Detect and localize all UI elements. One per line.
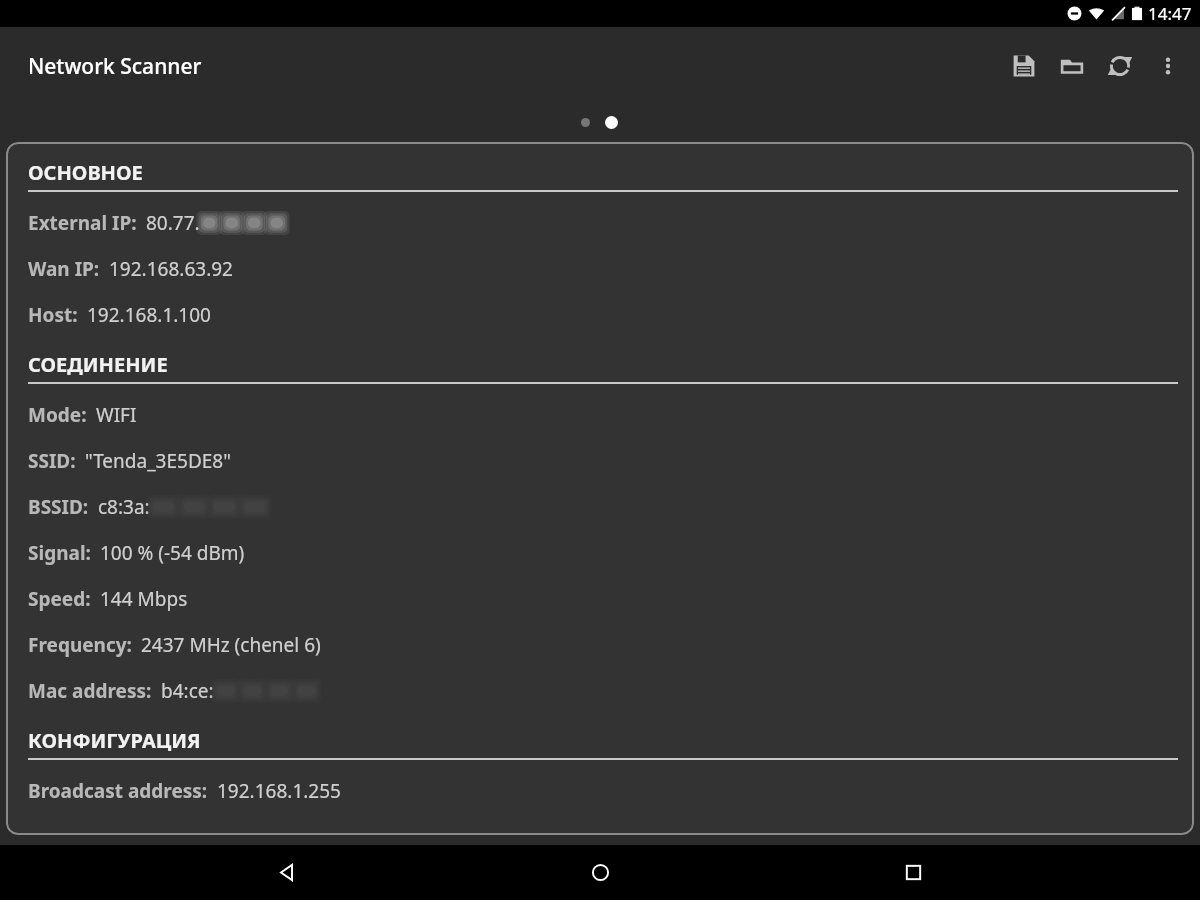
button[interactable]: BSSID: [28,484,1178,530]
staticText: Host: [28,302,78,328]
staticText: BSSID: [28,494,89,520]
staticText: 192.168.1.100 [87,302,211,328]
staticText: СОЕДИНЕНИЕ [28,351,168,378]
button[interactable]: Mode: [28,392,1178,438]
staticText: Wan IP: [28,256,100,282]
button[interactable]: More options [1144,42,1192,90]
staticText: КОНФИГУРАЦИЯ [28,727,201,754]
staticText: "Tenda_3E5DE8" [85,448,231,474]
staticText: SSID: [28,448,76,474]
staticText: Speed: [28,586,91,612]
staticText: 80.77. [146,210,200,236]
staticText: 144 Mbps [100,586,188,612]
staticText: Mac address: [28,678,152,704]
staticText: Signal: [28,540,91,566]
staticText: 2437 MHz (chenel 6) [141,632,321,658]
staticText: 100 % (-54 dBm) [100,540,245,566]
staticText: b4:ce: [161,678,214,704]
staticText: 192.168.63.92 [109,256,233,282]
button[interactable]: Signal: [28,530,1178,576]
staticText: Broadcast address: [28,778,208,804]
button[interactable]: Wan IP: [28,246,1178,292]
staticText: 14:47 [1148,2,1192,25]
staticText: WIFI [96,402,137,428]
staticText: c8:3a: [98,494,150,520]
button[interactable]: Host: [28,292,1178,338]
staticText: Network Scanner [28,52,202,81]
button[interactable]: Broadcast address: [28,768,1178,814]
button[interactable]: Frequency: [28,622,1178,668]
button[interactable]: Recents [886,845,941,900]
staticText: Mode: [28,402,87,428]
button[interactable]: Speed: [28,576,1178,622]
button[interactable]: External IP: [28,200,1178,246]
staticText: External IP: [28,210,137,236]
staticText: Frequency: [28,632,132,658]
button[interactable]: Back [259,845,314,900]
button[interactable]: Refresh [1096,42,1144,90]
button[interactable]: Save [1000,42,1048,90]
button[interactable]: SSID: [28,438,1178,484]
button[interactable]: Page 2 [605,116,618,129]
button[interactable]: Mac address: [28,668,1178,714]
button[interactable]: Open folder [1048,42,1096,90]
button[interactable]: Home [573,845,628,900]
button[interactable]: Page 1 [581,118,590,127]
staticText: ОСНОВНОЕ [28,159,143,186]
staticText: 192.168.1.255 [217,778,341,804]
